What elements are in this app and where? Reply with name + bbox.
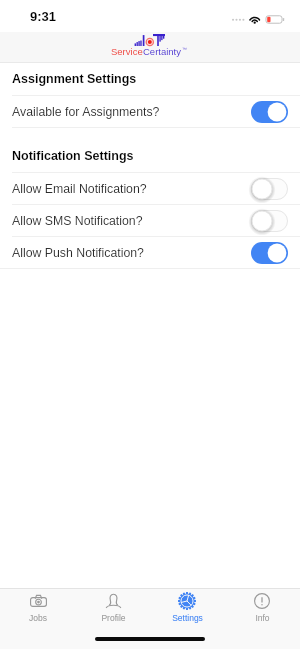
staticText: Allow SMS Notification? [12,214,143,228]
button[interactable]: Info [226,589,298,622]
button[interactable]: Allow Email Notification? [0,173,300,204]
staticText: Allow Push Notification? [12,246,144,260]
button[interactable]: Off [251,210,288,232]
button[interactable]: On [251,101,288,123]
staticText: Settings [172,613,203,622]
button[interactable]: On [251,242,288,264]
staticText: ™ [182,46,187,52]
staticText: Notification Settings [12,149,134,163]
button[interactable]: Allow Push Notification? [0,237,300,268]
button[interactable]: Profile [77,589,149,622]
staticText: Available for Assignments? [12,105,160,119]
staticText: 9:31 [30,9,57,24]
staticText: Jobs [29,613,47,622]
button[interactable]: Available for Assignments? [0,96,300,127]
staticText: Certainty [143,46,182,57]
other: Status icons [232,15,284,24]
staticText: Assignment Settings [12,72,137,86]
staticText: Service [111,46,143,57]
staticText: Info [255,613,270,622]
staticText: Allow Email Notification? [12,182,147,196]
button[interactable]: Allow SMS Notification? [0,205,300,236]
button[interactable]: Jobs [2,589,74,622]
button[interactable]: Off [251,178,288,200]
button[interactable]: Settings [151,589,223,622]
staticText: Profile [101,613,126,622]
